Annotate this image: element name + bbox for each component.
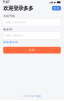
staticText: 《用户协议》 (28, 95, 34, 97)
button[interactable]: 登录 (3, 47, 61, 53)
staticText: 验证码 (3, 28, 12, 31)
staticText: 手机号码 (3, 14, 15, 18)
staticText: 切换 (53, 7, 59, 10)
staticText: 请输入验证码 (5, 34, 23, 37)
staticText: 《隐私政策》 (35, 95, 41, 97)
button[interactable]: 获取验证码 (3, 41, 18, 44)
button[interactable]: 《隐私政策》 (35, 95, 41, 97)
staticText: 9:41 (3, 0, 10, 4)
button[interactable]: 《用户协议》 (28, 95, 34, 97)
button[interactable]: 切换 (52, 6, 61, 10)
staticText: 请输入手机号码 (5, 21, 26, 24)
staticText: 登录代表同意 (22, 95, 28, 97)
staticText: 登录 (29, 48, 35, 52)
staticText: 欢迎登录多多 (3, 5, 33, 11)
staticText: 获取验证码 (3, 41, 18, 44)
